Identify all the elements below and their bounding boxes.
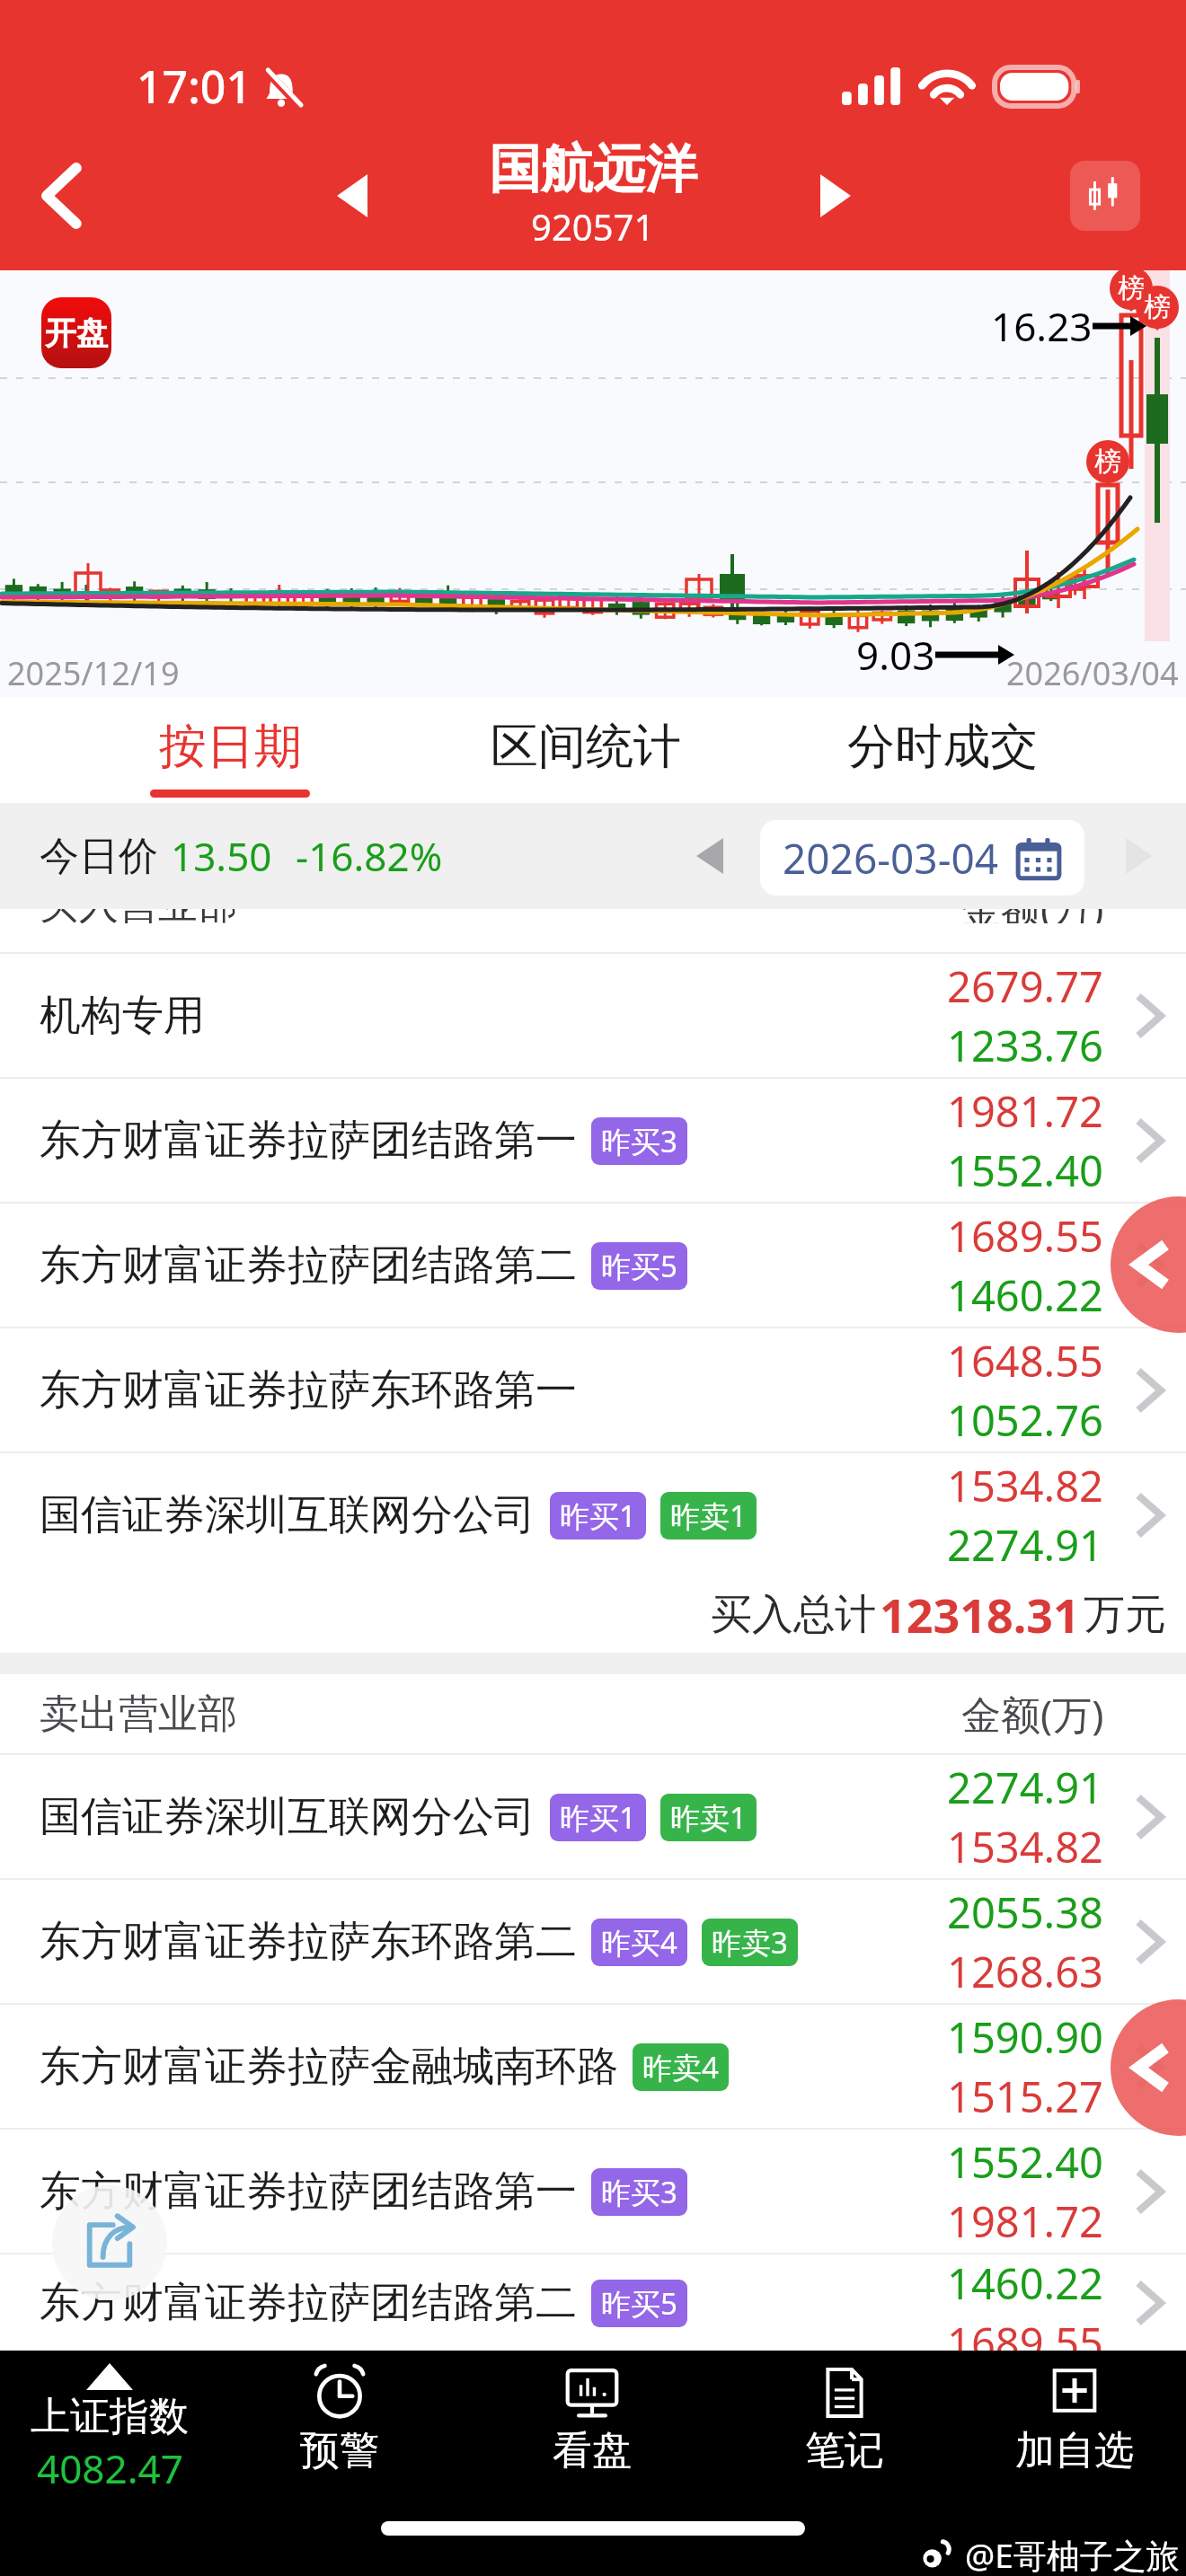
button[interactable]: 国信证券深圳互联网分公司: [0, 1453, 1186, 1576]
staticText: 2026/03/04: [1006, 651, 1179, 695]
button[interactable]: 东方财富证券拉萨金融城南环路: [0, 2005, 1186, 2128]
staticText: 1268.63: [947, 1943, 1103, 2000]
staticText: 9.03: [856, 628, 935, 682]
button[interactable]: 2026-03-04: [760, 820, 1084, 895]
staticText: 开盘: [45, 313, 108, 353]
staticText: 昨卖4: [642, 2047, 719, 2087]
button[interactable]: 看盘: [493, 2354, 691, 2489]
staticText: 东方财富证券拉萨团结路第一: [40, 2166, 577, 2218]
button[interactable]: 开盘: [41, 297, 111, 368]
staticText: 2274.91: [947, 1759, 1103, 1816]
button[interactable]: 东方财富证券拉萨团结路第一: [0, 2130, 1186, 2253]
button[interactable]: 加自选: [976, 2354, 1173, 2489]
staticText: 万元: [1084, 1589, 1166, 1641]
staticText: 昨买3: [601, 1121, 677, 1161]
staticText: 国信证券深圳互联网分公司: [40, 1791, 535, 1843]
staticText: 2026-03-04: [783, 830, 999, 887]
button[interactable]: 东方财富证券拉萨团结路第二: [0, 2254, 1186, 2351]
staticText: 昨卖1: [670, 1495, 747, 1536]
staticText: 1052.76: [947, 1391, 1103, 1449]
button[interactable]: Next stock: [782, 142, 889, 250]
staticText: 预警: [300, 2426, 379, 2475]
button[interactable]: 东方财富证券拉萨东环路第一: [0, 1328, 1186, 1451]
button[interactable]: 分时成交: [790, 697, 1095, 803]
button[interactable]: Share: [52, 2185, 167, 2300]
button[interactable]: Previous day: [674, 820, 746, 892]
staticText: 看盘: [553, 2426, 632, 2475]
staticText: 13.50: [171, 829, 272, 883]
staticText: 金额(万): [961, 1687, 1104, 1741]
staticText: 东方财富证券拉萨团结路第二: [40, 1239, 577, 1292]
staticText: @E哥柚子之旅: [965, 2532, 1180, 2576]
staticText: 昨卖1: [670, 1797, 747, 1838]
staticText: 昨卖3: [712, 1922, 788, 1963]
staticText: 2025/12/19: [7, 651, 180, 695]
staticText: -16.82%: [296, 829, 443, 883]
staticText: 12318.31: [880, 1583, 1080, 1646]
staticText: 1233.76: [947, 1017, 1103, 1074]
staticText: 金额(万): [961, 909, 1104, 923]
staticText: 榜: [1094, 445, 1121, 479]
button[interactable]: 笔记: [746, 2354, 943, 2489]
staticText: 卖出营业部: [40, 1689, 237, 1739]
staticText: 分时成交: [847, 717, 1038, 777]
staticText: 买入总计: [711, 1589, 876, 1641]
button[interactable]: 预警: [241, 2354, 438, 2489]
staticText: 昨买5: [601, 1246, 677, 1286]
staticText: 1515.27: [947, 2068, 1103, 2125]
staticText: 笔记: [805, 2426, 884, 2475]
button[interactable]: 东方财富证券拉萨团结路第一: [0, 1079, 1186, 1202]
button[interactable]: Back: [7, 142, 115, 250]
staticText: 买入营业部: [40, 909, 237, 923]
staticText: 920571: [531, 202, 655, 251]
button[interactable]: 国信证券深圳互联网分公司: [0, 1755, 1186, 1878]
staticText: 2055.38: [947, 1883, 1103, 1941]
staticText: 1689.55: [947, 2314, 1103, 2351]
staticText: 东方财富证券拉萨团结路第一: [40, 1115, 577, 1167]
staticText: 2679.77: [947, 957, 1103, 1015]
staticText: 1689.55: [947, 1207, 1103, 1265]
staticText: 昨买1: [560, 1495, 636, 1536]
staticText: 东方财富证券拉萨团结路第二: [40, 2277, 577, 2329]
staticText: 榜: [1144, 290, 1171, 324]
button[interactable]: Next day: [1103, 820, 1175, 892]
staticText: 1648.55: [947, 1332, 1103, 1389]
staticText: 区间统计: [491, 717, 681, 777]
staticText: 国航远洋: [489, 137, 697, 202]
button[interactable]: Back: [1111, 1196, 1186, 1333]
button[interactable]: Chart settings: [1051, 142, 1159, 250]
button[interactable]: 按日期: [77, 697, 383, 803]
staticText: 1460.22: [947, 2254, 1103, 2312]
staticText: 16.23: [991, 299, 1093, 353]
button[interactable]: 区间统计: [433, 697, 739, 803]
staticText: 按日期: [159, 717, 302, 777]
staticText: 昨买5: [601, 2283, 677, 2324]
staticText: 东方财富证券拉萨东环路第一: [40, 1364, 577, 1416]
staticText: 上证指数: [31, 2392, 189, 2441]
staticText: 榜: [1118, 271, 1145, 305]
button[interactable]: 东方财富证券拉萨团结路第二: [0, 1204, 1186, 1327]
button[interactable]: 机构专用: [0, 954, 1186, 1077]
staticText: 1552.40: [947, 2133, 1103, 2191]
staticText: 1460.22: [947, 1266, 1103, 1324]
staticText: 加自选: [1015, 2426, 1134, 2475]
button[interactable]: 东方财富证券拉萨东环路第二: [0, 1880, 1186, 2003]
staticText: 东方财富证券拉萨金融城南环路: [40, 2041, 618, 2093]
staticText: 17:01: [137, 56, 252, 117]
staticText: 今日价: [40, 832, 158, 881]
staticText: 1552.40: [947, 1142, 1103, 1199]
staticText: 机构专用: [40, 990, 205, 1042]
staticText: 1981.72: [947, 1082, 1103, 1140]
staticText: 2274.91: [947, 1516, 1103, 1574]
staticText: 昨买1: [560, 1797, 636, 1838]
staticText: 国信证券深圳互联网分公司: [40, 1489, 535, 1541]
staticText: 1534.82: [947, 1457, 1103, 1514]
staticText: 昨买4: [601, 1922, 677, 1963]
staticText: 1534.82: [947, 1818, 1103, 1875]
button[interactable]: Previous stock: [298, 142, 406, 250]
staticText: 东方财富证券拉萨东环路第二: [40, 1916, 577, 1968]
staticText: 1981.72: [947, 2192, 1103, 2250]
staticText: 昨买3: [601, 2172, 677, 2212]
button[interactable]: Back: [1111, 1999, 1186, 2136]
button[interactable]: 上证指数: [2, 2354, 217, 2489]
